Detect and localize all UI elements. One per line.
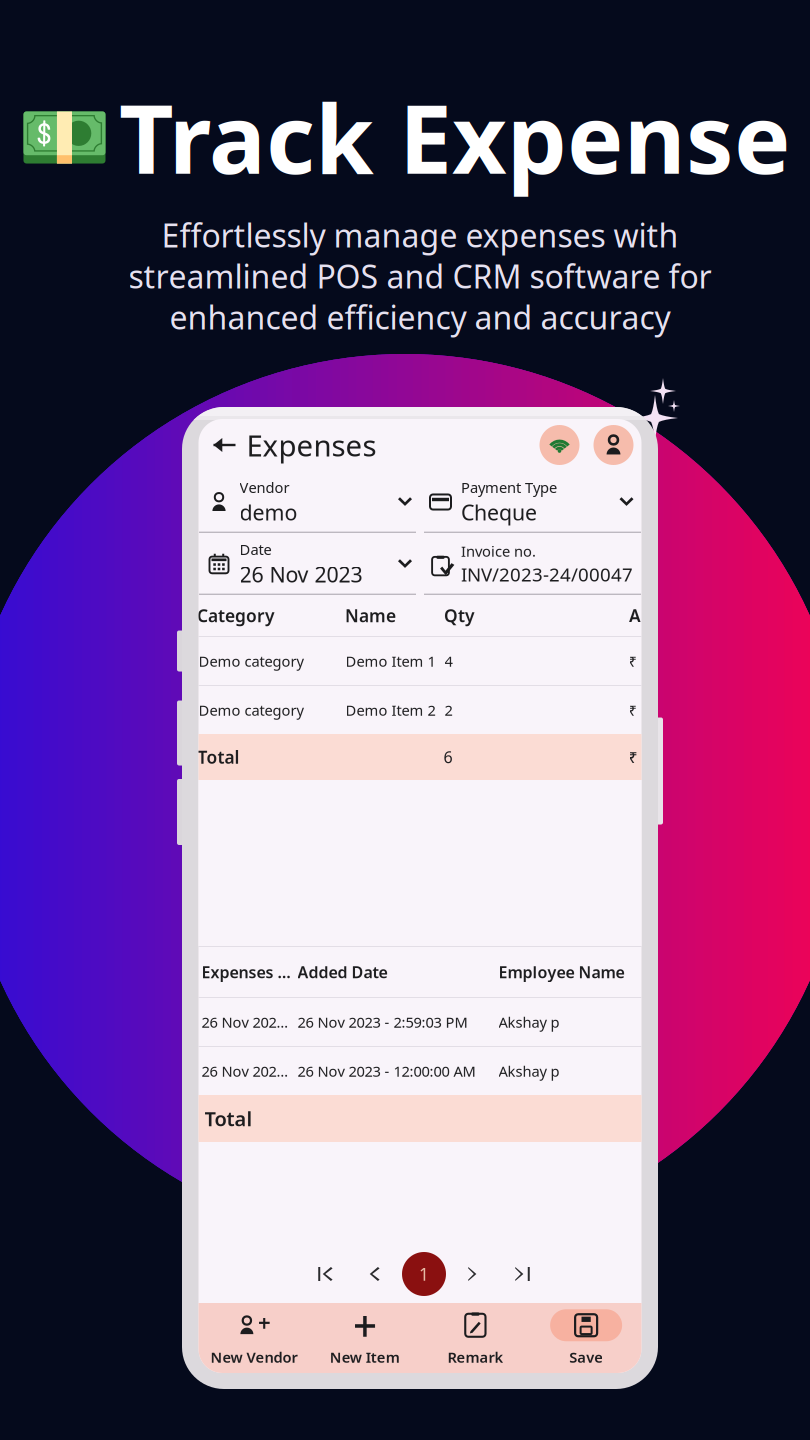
staticText: Invoice no. [461, 541, 536, 561]
button[interactable]: Back [202, 423, 246, 467]
staticText: 4 [444, 651, 452, 671]
staticText: Akshay p [498, 1061, 559, 1081]
staticText: 💵 [17, 94, 110, 180]
staticText: + [258, 1308, 271, 1338]
button[interactable]: + [198, 1303, 309, 1373]
staticText: Demo Item 2 [345, 700, 435, 720]
button[interactable]: Remark [420, 1303, 531, 1373]
staticText: Qty [444, 604, 474, 627]
button[interactable]: Payment Type [420, 471, 641, 533]
staticText: Payment Type [461, 478, 557, 497]
staticText: Date [239, 540, 271, 559]
button[interactable]: Next page [450, 1248, 496, 1300]
staticText: Category [197, 604, 274, 627]
staticText: ₹ [628, 746, 637, 768]
button[interactable]: 1 [401, 1248, 447, 1300]
staticText: 26 Nov 2023 [239, 560, 362, 588]
button[interactable]: Save [531, 1303, 642, 1373]
staticText: 26 Nov 2023 - 12:00:00 AM [297, 1061, 475, 1081]
button[interactable]: Profile [593, 425, 633, 465]
staticText: ₹ [628, 651, 636, 671]
staticText: New Item [330, 1347, 400, 1367]
staticText: 2 [444, 700, 452, 720]
button[interactable]: Previous page [352, 1248, 398, 1300]
button[interactable]: Network [539, 425, 579, 465]
staticText: Employee Name [498, 961, 624, 983]
staticText: ₹ [628, 700, 636, 720]
staticText: 1 [419, 1262, 429, 1285]
staticText: New Vendor [210, 1347, 297, 1367]
staticText: Total [204, 1105, 252, 1132]
staticText: demo [239, 498, 297, 526]
staticText: Expenses … [201, 961, 290, 983]
staticText: 26 Nov 202… [201, 1061, 288, 1081]
button[interactable]: Vendor [198, 471, 420, 533]
staticText: Effortlessly manage expenses with [161, 214, 678, 256]
staticText: Name [345, 604, 396, 627]
staticText: 26 Nov 2023 - 2:59:03 PM [297, 1012, 467, 1032]
staticText: Added Date [297, 961, 387, 983]
staticText: Cheque [461, 498, 537, 526]
staticText: Demo category [198, 700, 303, 720]
staticText: enhanced efficiency and accuracy [169, 296, 670, 338]
staticText: Save [569, 1347, 603, 1367]
staticText: INV/2023-24/00047 [461, 562, 633, 587]
staticText: Demo category [198, 651, 303, 671]
staticText: Expenses [246, 425, 376, 464]
button[interactable]: Invoice no. [420, 533, 641, 595]
button[interactable]: First page [302, 1248, 348, 1300]
button[interactable]: Last page [499, 1248, 545, 1300]
staticText: 6 [443, 746, 452, 768]
button[interactable]: + [309, 1303, 420, 1373]
staticText: streamlined POS and CRM software for [128, 255, 711, 297]
staticText: Remark [447, 1347, 503, 1367]
staticText: Demo Item 1 [345, 651, 435, 671]
staticText: + [353, 1297, 377, 1354]
staticText: Total [197, 745, 239, 768]
staticText: A [629, 604, 641, 627]
staticText: Track Expense [119, 74, 791, 200]
staticText: 26 Nov 202… [201, 1012, 288, 1032]
button[interactable]: Date [198, 533, 420, 595]
staticText: Akshay p [498, 1012, 559, 1032]
staticText: Vendor [239, 478, 289, 497]
